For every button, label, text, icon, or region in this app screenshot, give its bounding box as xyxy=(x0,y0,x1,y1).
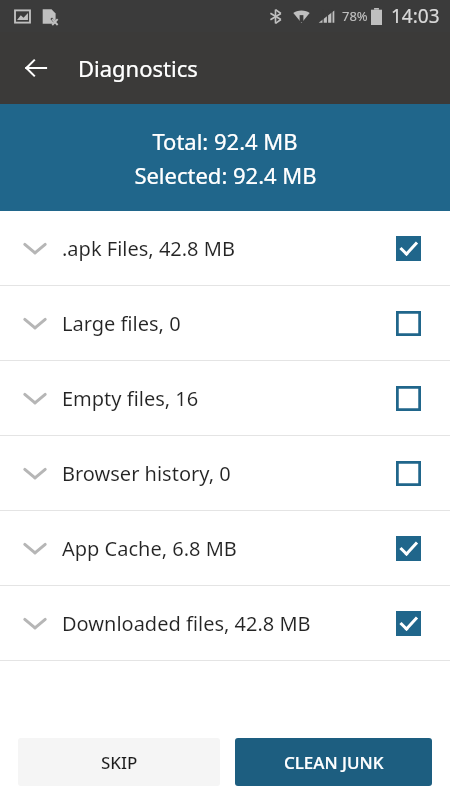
staticText: CLEAN JUNK xyxy=(284,751,384,774)
staticText: Selected: 92.4 MB xyxy=(134,160,317,190)
button[interactable]: App Cache, 6.8 MB xyxy=(0,511,450,585)
staticText: Total: 92.4 MB xyxy=(152,126,298,156)
button[interactable]: App Cache, 6.8 MB checkbox xyxy=(384,524,432,572)
button[interactable]: Downloaded files, 42.8 MB xyxy=(0,586,450,660)
staticText: 78% xyxy=(342,7,368,25)
staticText: App Cache, 6.8 MB xyxy=(62,535,384,562)
button[interactable]: SKIP xyxy=(18,738,220,786)
button[interactable]: Downloaded files, 42.8 MB checkbox xyxy=(384,599,432,647)
staticText: SKIP xyxy=(101,751,138,774)
button[interactable]: Empty files, 16 checkbox xyxy=(384,374,432,422)
button[interactable]: Back xyxy=(12,44,60,92)
button[interactable]: CLEAN JUNK xyxy=(235,738,432,786)
button[interactable]: Large files, 0 checkbox xyxy=(384,299,432,347)
button[interactable]: .apk Files, 42.8 MB checkbox xyxy=(384,224,432,272)
button[interactable]: Empty files, 16 xyxy=(0,361,450,435)
staticText: .apk Files, 42.8 MB xyxy=(62,235,384,262)
button[interactable]: .apk Files, 42.8 MB xyxy=(0,211,450,285)
staticText: Empty files, 16 xyxy=(62,385,384,412)
staticText: 14:03 xyxy=(391,3,440,29)
button[interactable]: Large files, 0 xyxy=(0,286,450,360)
staticText: Large files, 0 xyxy=(62,310,384,337)
button[interactable]: Browser history, 0 checkbox xyxy=(384,449,432,497)
staticText: Diagnostics xyxy=(78,53,198,83)
staticText: Browser history, 0 xyxy=(62,460,384,487)
button[interactable]: Browser history, 0 xyxy=(0,436,450,510)
staticText: Downloaded files, 42.8 MB xyxy=(62,610,384,637)
